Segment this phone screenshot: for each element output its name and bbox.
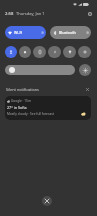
- staticText: Thursday, Jan 1: [16, 11, 45, 16]
- button[interactable]: Quick setting 2: [19, 46, 31, 58]
- staticText: 2:58: [5, 11, 14, 17]
- button[interactable]: Wi-Fi: [5, 26, 46, 39]
- button[interactable]: Bluetooth: [50, 26, 91, 39]
- button[interactable]: Quick setting 4: [48, 46, 61, 58]
- staticText: 27° in Sofia: [7, 105, 27, 110]
- staticText: Bluetooth: [59, 30, 76, 35]
- button[interactable]: Quick setting 3: [33, 46, 46, 58]
- button[interactable]: Auto brightness: [79, 64, 91, 76]
- button[interactable]: Settings: [86, 10, 94, 18]
- button[interactable]: Clear all notifications: [42, 196, 52, 206]
- button[interactable]: Brightness: [5, 65, 75, 75]
- staticText: Wi-Fi: [14, 30, 23, 35]
- button[interactable]: Quick setting 6: [78, 46, 91, 58]
- staticText: Mostly cloudy · See full forecast: [7, 112, 54, 116]
- button[interactable]: Quick setting 5: [63, 46, 76, 58]
- staticText: Silent notifications: [6, 87, 39, 92]
- button[interactable]: Clear silent notifications: [84, 86, 91, 93]
- staticText: Google · 15m: [11, 99, 31, 103]
- button[interactable]: Google · 15m: [5, 96, 91, 120]
- button[interactable]: Quick setting 1: [5, 46, 17, 58]
